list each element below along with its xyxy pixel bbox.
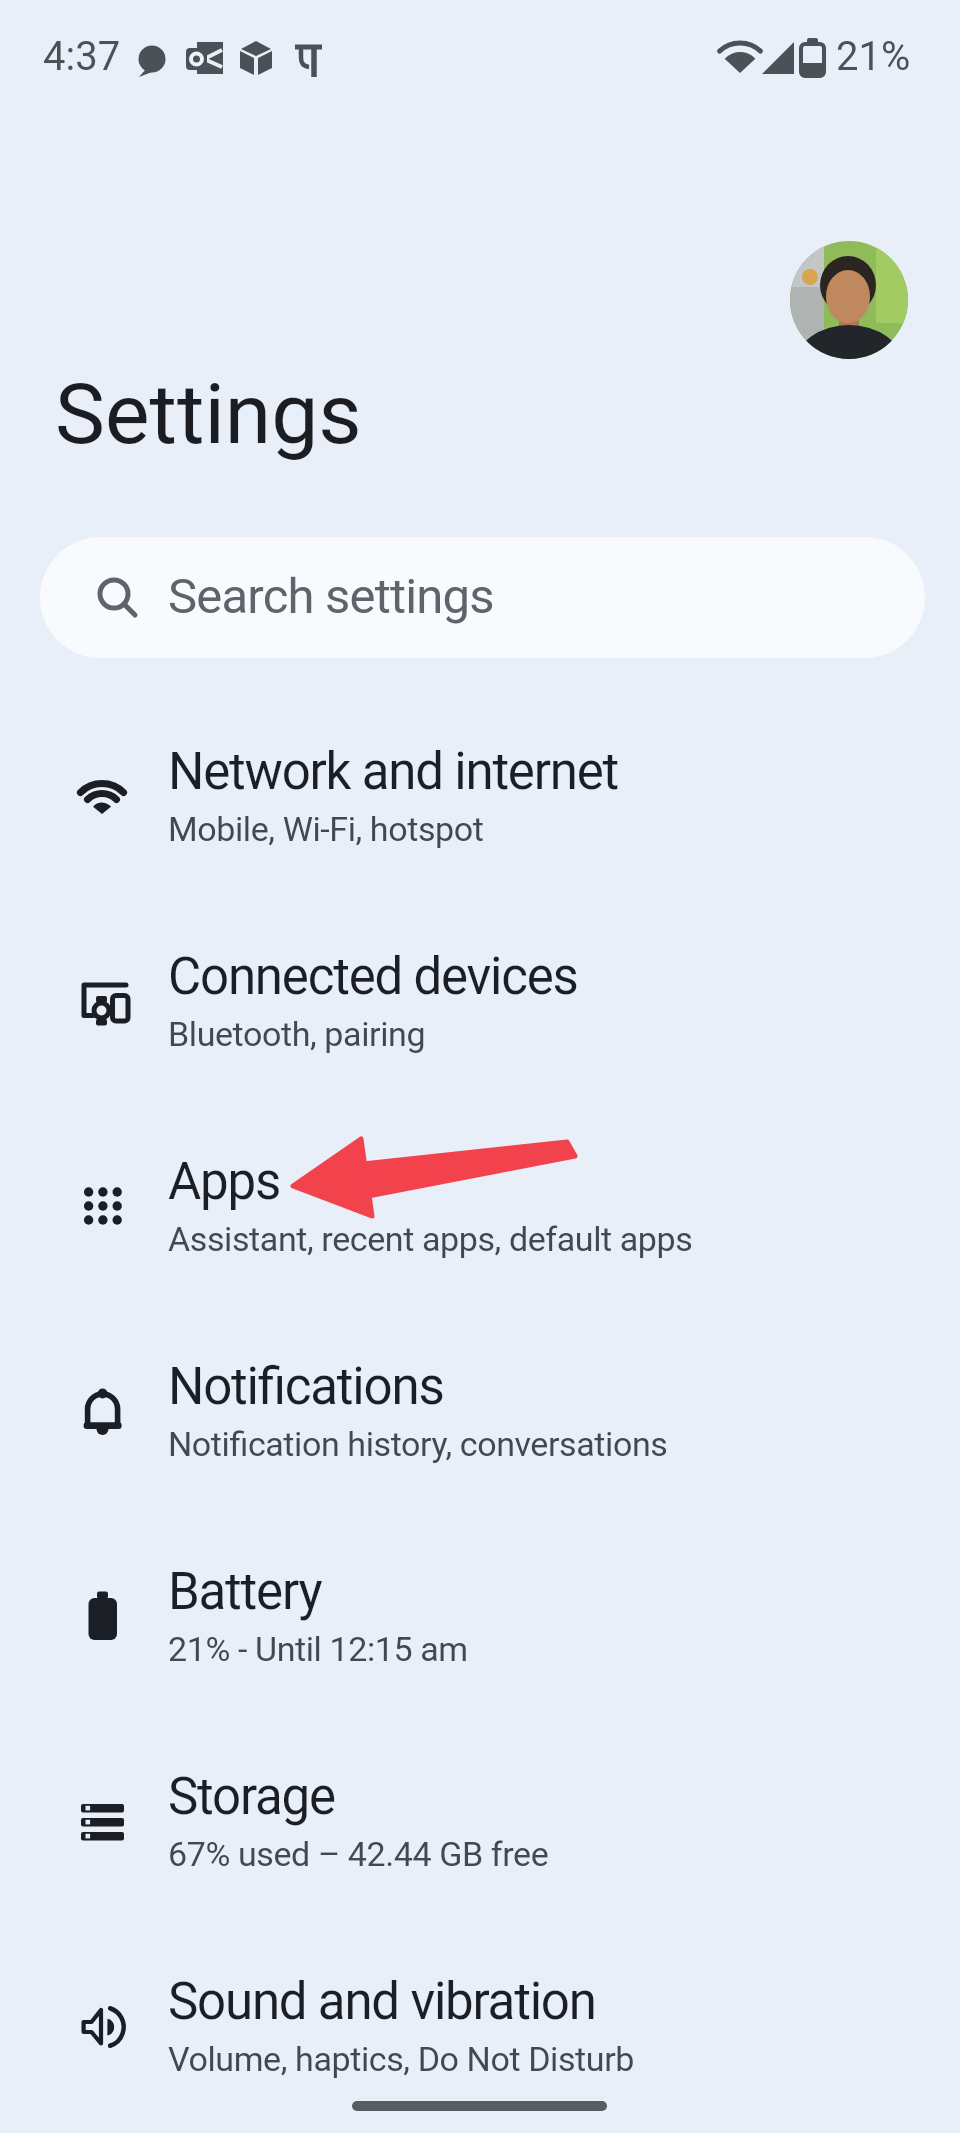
staticText: 67% used – 42.44 GB free bbox=[168, 1834, 549, 1874]
staticText: Search settings bbox=[168, 568, 494, 625]
staticText: 21% bbox=[836, 33, 911, 80]
staticText: Battery bbox=[168, 1562, 322, 1622]
staticText: 4:37 bbox=[43, 33, 121, 80]
button[interactable]: Apps bbox=[0, 1107, 960, 1312]
staticText: Mobile, Wi-Fi, hotspot bbox=[168, 809, 484, 849]
staticText: Volume, haptics, Do Not Disturb bbox=[168, 2039, 634, 2079]
button[interactable]: Network and internet bbox=[0, 697, 960, 902]
button[interactable]: Storage bbox=[0, 1722, 960, 1927]
button[interactable]: Sound and vibration bbox=[0, 1927, 960, 2132]
staticText: Network and internet bbox=[168, 742, 619, 802]
staticText: Bluetooth, pairing bbox=[168, 1014, 426, 1054]
button[interactable]: Search settings bbox=[40, 537, 925, 658]
staticText: Connected devices bbox=[168, 947, 578, 1007]
staticText: Settings bbox=[55, 365, 362, 463]
staticText: Notification history, conversations bbox=[168, 1424, 668, 1464]
button[interactable]: Battery bbox=[0, 1517, 960, 1722]
staticText: Storage bbox=[168, 1767, 335, 1827]
button[interactable]: Notifications bbox=[0, 1312, 960, 1517]
staticText: Notifications bbox=[168, 1357, 444, 1417]
staticText: 21% - Until 12:15 am bbox=[168, 1629, 468, 1669]
staticText: Assistant, recent apps, default apps bbox=[168, 1219, 693, 1259]
staticText: Apps bbox=[168, 1152, 281, 1212]
button[interactable]: Connected devices bbox=[0, 902, 960, 1107]
staticText: Sound and vibration bbox=[168, 1972, 596, 2032]
